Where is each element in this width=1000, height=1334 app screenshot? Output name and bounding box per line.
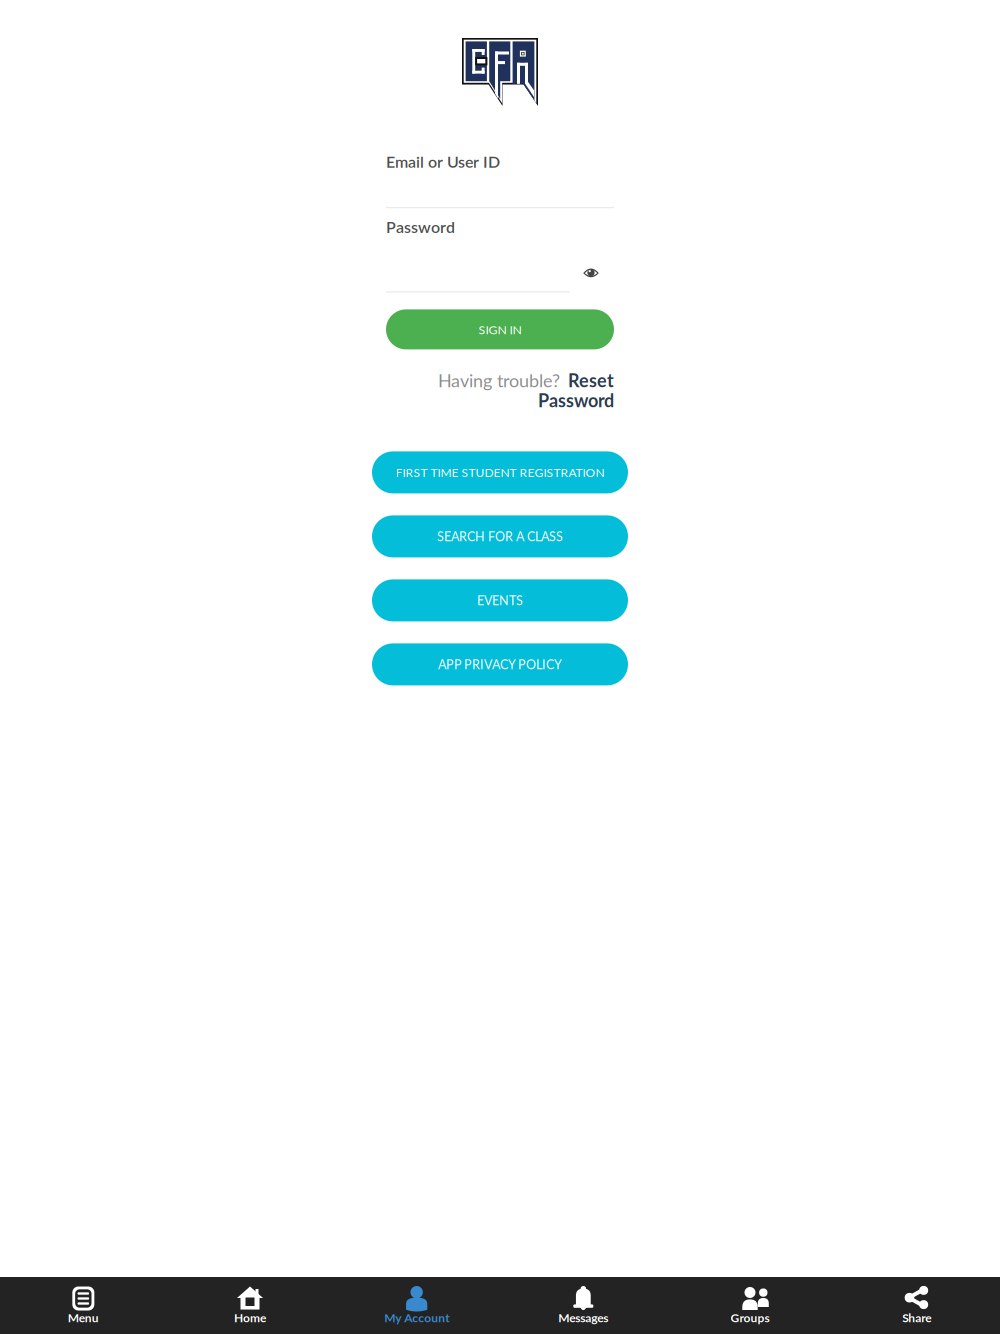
staticText: Home [234, 1310, 266, 1325]
staticText: My Account [384, 1310, 449, 1325]
button[interactable]: APP PRIVACY POLICY [372, 643, 628, 685]
staticText: Email or User ID [386, 152, 500, 171]
staticText: Having trouble? [438, 370, 560, 391]
staticText: Groups [730, 1310, 769, 1325]
button[interactable]: Home [167, 1277, 333, 1334]
staticText: SEARCH FOR A CLASS [437, 529, 563, 544]
button[interactable]: FIRST TIME STUDENT REGISTRATION [372, 451, 628, 493]
button[interactable]: Messages [500, 1277, 667, 1334]
staticText: Menu [68, 1310, 99, 1325]
button[interactable]: Menu [0, 1277, 167, 1334]
staticText: APP PRIVACY POLICY [438, 657, 562, 672]
staticText: Share [902, 1310, 931, 1325]
button[interactable]: Share [833, 1277, 1000, 1334]
staticText: EVENTS [477, 593, 523, 608]
staticText: Reset [568, 370, 614, 391]
staticText: Messages [558, 1310, 608, 1325]
button[interactable]: Groups [667, 1277, 833, 1334]
button[interactable]: SIGN IN [386, 309, 614, 349]
staticText: Password [386, 217, 455, 236]
button[interactable]: My Account [333, 1277, 500, 1334]
staticText: Password [538, 390, 614, 411]
button[interactable]: EVENTS [372, 579, 628, 621]
staticText: FIRST TIME STUDENT REGISTRATION [395, 465, 604, 480]
button[interactable]: Having trouble? [386, 370, 614, 410]
button[interactable]: Show password [576, 261, 606, 285]
staticText: SIGN IN [478, 322, 521, 337]
button[interactable]: SEARCH FOR A CLASS [372, 515, 628, 557]
